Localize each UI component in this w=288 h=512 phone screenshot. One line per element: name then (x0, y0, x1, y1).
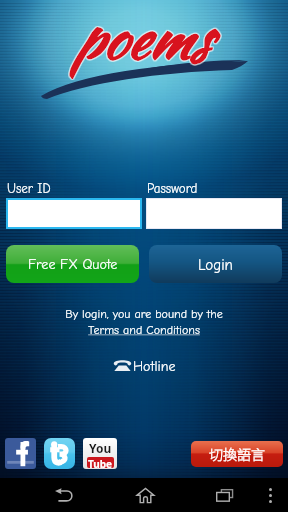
staticText: Login (198, 256, 233, 273)
staticText: poems (74, 0, 209, 78)
button[interactable]: Terms and Conditions (88, 323, 200, 337)
button[interactable]: More options (252, 478, 288, 512)
button[interactable]: 切換語言 (191, 441, 283, 467)
staticText: poems (75, 0, 210, 77)
button[interactable]: Free FX Quote (6, 245, 139, 283)
button[interactable]: Login (149, 245, 282, 283)
button[interactable]: Home (117, 478, 173, 512)
button[interactable]: Recent apps (197, 478, 253, 512)
button[interactable]: Hotline (113, 358, 176, 374)
button[interactable]: Twitter (44, 438, 75, 469)
button[interactable]: YouTube (83, 438, 117, 469)
staticText: You (89, 440, 112, 456)
staticText: poems (75, 0, 210, 78)
staticText: poems (73, 0, 208, 79)
staticText: Password (147, 181, 198, 196)
staticText: User ID (7, 181, 51, 196)
staticText: poems (73, 0, 208, 77)
staticText: Tube (88, 457, 113, 468)
button[interactable]: Facebook (5, 438, 36, 469)
staticText: Free FX Quote (28, 256, 118, 272)
staticText: 切換語言 (209, 444, 265, 464)
button[interactable]: Back (36, 478, 92, 512)
staticText: poems (73, 0, 208, 78)
staticText: poems (74, 0, 209, 77)
staticText: poems (75, 0, 210, 79)
staticText: Hotline (133, 358, 176, 374)
staticText: By login, you are bound by the (65, 307, 223, 321)
staticText: poems (74, 0, 209, 79)
